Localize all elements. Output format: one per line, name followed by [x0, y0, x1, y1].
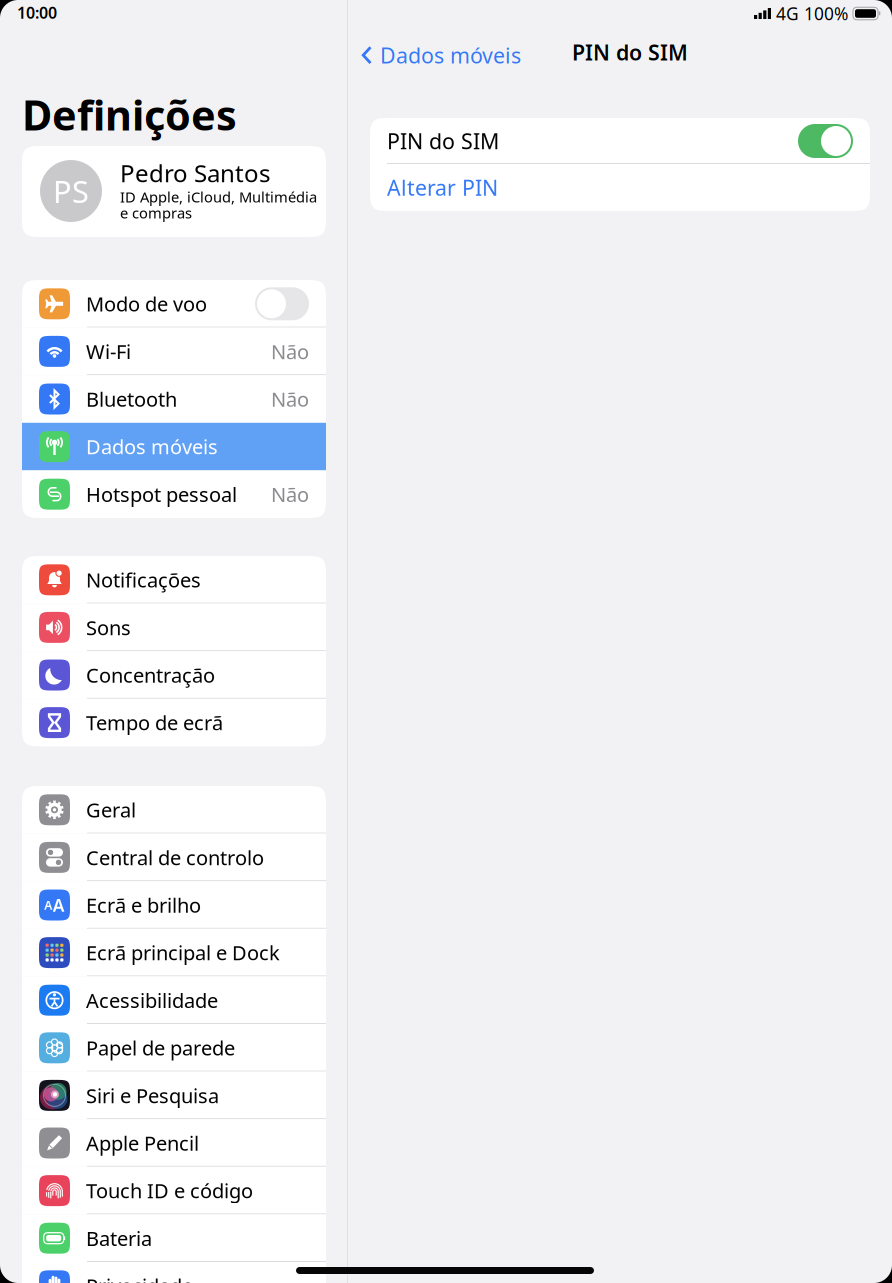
staticText: Bluetooth — [86, 386, 177, 412]
button[interactable]: A — [22, 881, 326, 929]
button[interactable]: Dados móveis — [22, 423, 326, 470]
staticText: Concentração — [86, 662, 215, 688]
staticText: Sons — [86, 614, 131, 641]
button[interactable]: Hotspot pessoal — [22, 470, 326, 518]
staticText: Siri e Pesquisa — [86, 1082, 219, 1109]
button[interactable]: Bluetooth — [22, 375, 326, 423]
button[interactable]: Sons — [22, 604, 326, 651]
button[interactable]: Wi-Fi — [22, 328, 326, 375]
button[interactable]: Acessibilidade — [22, 976, 326, 1024]
button[interactable]: Bateria — [22, 1214, 326, 1262]
button[interactable]: Concentração — [22, 651, 326, 699]
staticText: Geral — [86, 796, 136, 823]
staticText: Bateria — [86, 1225, 152, 1251]
staticText: 10:00 — [17, 2, 57, 23]
staticText: PS — [53, 171, 89, 211]
staticText: PIN do SIM — [572, 38, 688, 66]
staticText: Papel de parede — [86, 1034, 235, 1061]
staticText: A — [53, 893, 65, 916]
button[interactable]: Touch ID e código — [22, 1167, 326, 1214]
staticText: Touch ID e código — [86, 1177, 253, 1204]
staticText: e compras — [120, 203, 192, 222]
staticText: Privacidade — [86, 1272, 193, 1283]
button[interactable]: Papel de parede — [22, 1024, 326, 1072]
staticText: 4G — [776, 2, 799, 25]
button[interactable]: Notificações — [22, 556, 326, 604]
button[interactable]: Ecrã principal e Dock — [22, 929, 326, 976]
staticText: Notificações — [86, 566, 201, 593]
button[interactable]: Alterar PIN — [370, 164, 870, 211]
staticText: Central de controlo — [86, 844, 264, 871]
staticText: Definições — [22, 87, 237, 142]
staticText: Não — [271, 386, 309, 412]
staticText: Modo de voo — [86, 290, 207, 317]
staticText: Pedro Santos — [120, 157, 270, 189]
staticText: Alterar PIN — [387, 173, 498, 202]
button[interactable]: Dados móveis — [361, 35, 521, 75]
button[interactable]: Geral — [22, 786, 326, 834]
staticText: A — [44, 897, 52, 913]
staticText: Não — [271, 338, 309, 365]
button[interactable]: Apple Pencil — [22, 1119, 326, 1167]
button[interactable]: Modo de voo — [22, 280, 326, 328]
staticText: Ecrã principal e Dock — [86, 939, 280, 966]
staticText: Não — [271, 481, 309, 507]
staticText: Dados móveis — [86, 433, 218, 460]
button[interactable]: Central de controlo — [22, 834, 326, 881]
button[interactable]: Tempo de ecrã — [22, 699, 326, 746]
staticText: Acessibilidade — [86, 987, 218, 1013]
staticText: 100% — [804, 2, 848, 25]
staticText: ID Apple, iCloud, Multimédia — [120, 187, 317, 206]
staticText: Wi-Fi — [86, 338, 131, 365]
staticText: Tempo de ecrã — [86, 709, 223, 736]
staticText: Apple Pencil — [86, 1130, 199, 1156]
button[interactable]: PS — [22, 146, 326, 237]
staticText: Ecrã e brilho — [86, 892, 201, 918]
button[interactable]: Siri e Pesquisa — [22, 1072, 326, 1119]
staticText: Hotspot pessoal — [86, 481, 237, 507]
staticText: PIN do SIM — [387, 127, 499, 155]
button[interactable]: Privacidade — [22, 1262, 326, 1283]
staticText: Dados móveis — [380, 41, 521, 69]
